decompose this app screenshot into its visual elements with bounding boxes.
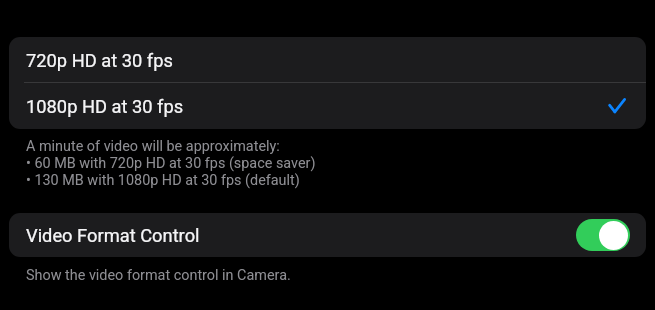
staticText: 1080p HD at 30 fps bbox=[26, 96, 184, 117]
staticText: Show the video format control in Camera. bbox=[26, 267, 291, 284]
button[interactable]: 720p HD at 30 fps bbox=[9, 37, 646, 83]
button[interactable]: Video Format Control bbox=[9, 213, 646, 257]
staticText: • 130 MB with 1080p HD at 30 fps (defaul… bbox=[26, 172, 300, 189]
button[interactable]: Video Format Control, on bbox=[576, 219, 630, 251]
button[interactable]: 1080p HD at 30 fps bbox=[9, 83, 646, 129]
staticText: Video Format Control bbox=[26, 225, 200, 246]
other: Selected bbox=[608, 98, 626, 114]
staticText: 720p HD at 30 fps bbox=[26, 50, 173, 71]
staticText: A minute of video will be approximately: bbox=[26, 138, 280, 155]
staticText: • 60 MB with 720p HD at 30 fps (space sa… bbox=[26, 155, 316, 172]
